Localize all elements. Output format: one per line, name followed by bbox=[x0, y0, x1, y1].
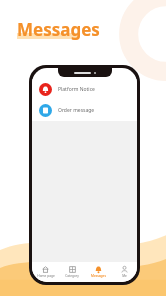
button[interactable]: Order message bbox=[32, 100, 137, 121]
button[interactable]: Me bbox=[111, 262, 137, 282]
button[interactable]: Category bbox=[59, 262, 85, 282]
staticText: Messages bbox=[91, 274, 106, 278]
button[interactable]: Home page bbox=[32, 262, 59, 282]
staticText: Messages bbox=[17, 18, 100, 41]
staticText: Home page bbox=[37, 274, 55, 278]
button[interactable]: Messages bbox=[85, 262, 111, 282]
button[interactable]: Platform Notice bbox=[32, 79, 137, 100]
staticText: Order message bbox=[58, 107, 95, 114]
staticText: Category bbox=[65, 274, 79, 278]
staticText: Me bbox=[122, 274, 127, 278]
staticText: Platform Notice bbox=[58, 86, 95, 93]
